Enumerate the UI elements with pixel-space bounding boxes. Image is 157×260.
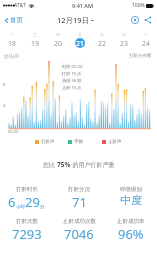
staticText: 二 [10, 32, 14, 37]
staticText: 三 [33, 32, 37, 37]
staticText: 打鼾分贝 [68, 186, 90, 193]
staticText: 次/分贝 [4, 53, 20, 59]
staticText: 20 [54, 39, 62, 48]
staticText: 75% [57, 160, 71, 169]
staticText: 19 [31, 39, 39, 48]
button[interactable]: 止鼾声 [102, 139, 122, 145]
staticText: 6 [8, 193, 16, 211]
staticText: 7046 [64, 225, 94, 243]
staticText: 96% [118, 225, 144, 243]
staticText: 打鼾声 [41, 139, 55, 145]
button[interactable]: 止鼾成功率 [105, 218, 157, 250]
staticText: 止鼾 15 次 [62, 85, 82, 91]
staticText: 打鼾时长 [16, 186, 38, 193]
staticText: 9:41 AM [72, 2, 94, 9]
staticText: 打鼾次数 [16, 218, 38, 225]
staticText: 打鼾 15 次 [62, 71, 82, 77]
staticText: 71 [72, 193, 87, 211]
staticText: 四 [56, 32, 60, 37]
staticText: 持续 56 秒 [62, 78, 82, 84]
staticText: 21 [76, 39, 84, 48]
staticText: 分 [40, 204, 45, 210]
button[interactable]: 五 [69, 32, 91, 48]
button[interactable]: 一 [135, 32, 157, 48]
staticText: 4 [3, 103, 6, 109]
staticText: 8 [3, 82, 6, 88]
staticText: 23 [120, 39, 128, 48]
staticText: 一 [144, 32, 148, 37]
staticText: 00:00 [8, 129, 19, 134]
staticText: 平躺 [74, 139, 83, 145]
button[interactable]: 打鼾声 [35, 139, 55, 145]
button[interactable]: 打鼾分贝 [53, 186, 105, 218]
staticText: 7293 [12, 225, 42, 243]
staticText: 100% [132, 2, 145, 9]
button[interactable]: 六 [91, 32, 113, 48]
staticText: 止鼾成功次数 [63, 218, 96, 225]
button[interactable]: 打鼾次数 [0, 218, 53, 250]
staticText: 您比 [43, 161, 57, 169]
button[interactable]: 四 [46, 32, 69, 48]
staticText: 18 [8, 39, 16, 48]
staticText: 29 [25, 193, 40, 211]
button[interactable]: 三 [23, 32, 46, 48]
staticText: 五 [78, 32, 82, 37]
staticText: 小时 [16, 204, 25, 210]
button[interactable]: 平躺 [68, 139, 83, 145]
button[interactable]: Target [129, 14, 140, 25]
staticText: 时间 01:23 [62, 64, 83, 70]
staticText: 的用户打鼾严重 [71, 161, 115, 169]
staticText: 首页 [10, 16, 23, 24]
button[interactable]: 呼噜级别 [105, 186, 157, 218]
staticText: 止鼾声 [108, 139, 122, 145]
staticText: 日 [122, 32, 126, 37]
staticText: 六 [100, 32, 104, 37]
button[interactable]: 二 [0, 32, 23, 48]
staticText: 24 [142, 39, 150, 48]
staticText: 22 [98, 39, 106, 48]
button[interactable]: 日 [113, 32, 135, 48]
staticText: AT&T [14, 2, 26, 9]
staticText: 打鼾分布图 [129, 53, 152, 59]
button[interactable]: Share [142, 14, 153, 25]
button[interactable]: 首页 [3, 14, 23, 26]
staticText: 止鼾成功率 [117, 218, 145, 225]
staticText: 呼噜级别 [120, 186, 142, 193]
button[interactable]: 止鼾成功次数 [53, 218, 105, 250]
button[interactable]: 打鼾时长 [0, 186, 53, 218]
staticText: 中度 [120, 193, 142, 207]
staticText: 12月19日 [57, 15, 90, 25]
button[interactable]: 12月19日 [57, 15, 94, 25]
